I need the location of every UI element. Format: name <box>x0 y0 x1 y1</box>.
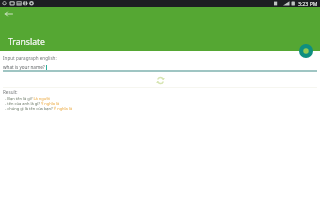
button[interactable]: Translate <box>299 44 313 58</box>
staticText: Input paragraph english: <box>3 55 57 61</box>
button[interactable]: what is your name? <box>3 64 317 72</box>
staticText: - chúng gì là tên của bạn? Ý nghĩa là <box>5 106 73 111</box>
staticText: what is your name? <box>3 64 45 70</box>
button[interactable]: Refresh translation <box>155 75 166 86</box>
staticText: Result: <box>3 89 18 95</box>
button[interactable]: Back <box>2 7 16 21</box>
staticText: 3:23 PM <box>298 0 318 7</box>
staticText: - tên của anh là gì? Ý nghĩa là <box>5 101 60 106</box>
staticText: Translate <box>8 36 45 48</box>
staticText: - Bạn tên là gì? Là người <box>5 96 50 101</box>
